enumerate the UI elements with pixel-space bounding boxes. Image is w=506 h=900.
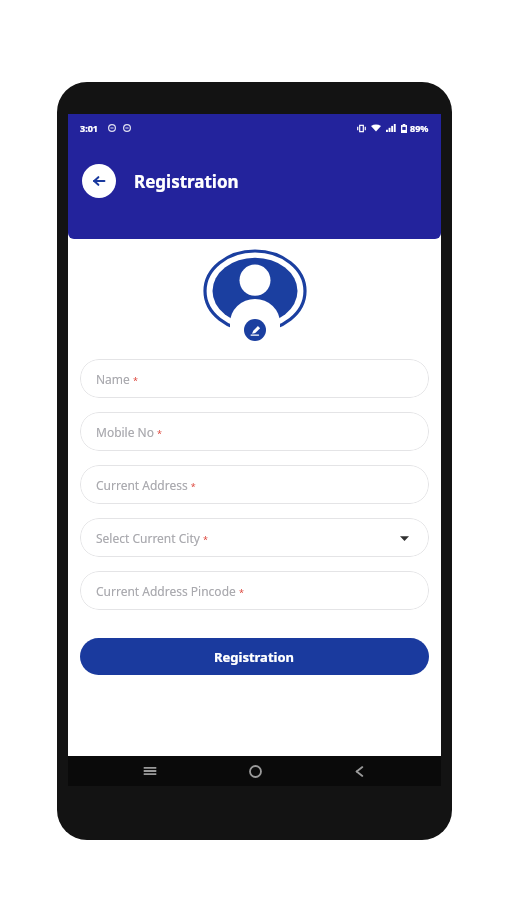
button[interactable]: Home [233,756,277,786]
staticText: Name * [96,371,138,387]
staticText: Select Current City * [96,530,208,546]
staticText: 3:01 [80,122,98,134]
button[interactable]: Profile photo [205,251,305,331]
button[interactable]: Recent apps [128,756,172,786]
button[interactable]: Mobile No * [80,412,429,451]
staticText: Registration [134,170,239,193]
button[interactable]: Current Address * [80,465,429,504]
staticText: Registration [214,648,295,666]
button[interactable]: Edit photo [244,319,266,341]
button[interactable]: Registration [80,638,429,675]
button[interactable]: Select Current City * [80,518,429,557]
button[interactable]: Name * [80,359,429,398]
staticText: 89% [410,122,429,134]
button[interactable]: Current Address Pincode * [80,571,429,610]
staticText: Current Address * [96,477,196,493]
staticText: Current Address Pincode * [96,583,244,599]
staticText: Mobile No * [96,424,163,440]
button[interactable]: Back [82,164,116,198]
button[interactable]: Back [337,756,381,786]
